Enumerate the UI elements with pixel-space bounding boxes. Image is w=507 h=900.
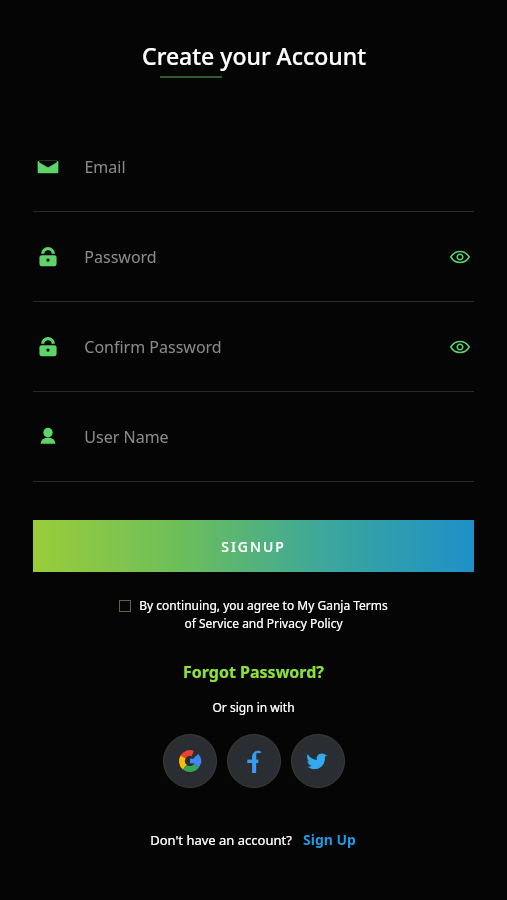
staticText: Confirm Password — [84, 336, 222, 358]
button[interactable]: Confirm Password — [0, 302, 507, 392]
staticText: By continuing, you agree to My Ganja Ter… — [139, 597, 388, 613]
staticText: Create your Account — [142, 40, 366, 71]
staticText: of Service and Privacy Policy — [184, 615, 343, 631]
staticText: Email — [84, 156, 126, 178]
button[interactable]: Sign in with Google — [163, 734, 217, 788]
staticText: Forgot Password? — [183, 661, 324, 683]
button[interactable]: By continuing, you agree to My Ganja Ter… — [30, 597, 477, 631]
button[interactable]: Sign in with Twitter — [291, 734, 345, 788]
staticText: User Name — [84, 426, 169, 448]
button[interactable]: SIGNUP — [33, 520, 474, 572]
button[interactable]: Password — [0, 212, 507, 302]
button[interactable]: Sign in with Facebook — [227, 734, 281, 788]
button[interactable]: Sign Up — [301, 827, 358, 852]
staticText: Sign Up — [303, 830, 356, 849]
staticText: Don't have an account? — [150, 831, 292, 849]
button[interactable]: User Name — [0, 392, 507, 482]
button[interactable]: Toggle password visibility — [446, 243, 474, 271]
button[interactable]: Toggle password visibility — [446, 333, 474, 361]
button[interactable]: Email — [0, 122, 507, 212]
button[interactable]: Forgot Password? — [171, 657, 336, 687]
staticText: SIGNUP — [221, 537, 286, 556]
staticText: Password — [84, 246, 157, 268]
staticText: Or sign in with — [212, 699, 295, 715]
